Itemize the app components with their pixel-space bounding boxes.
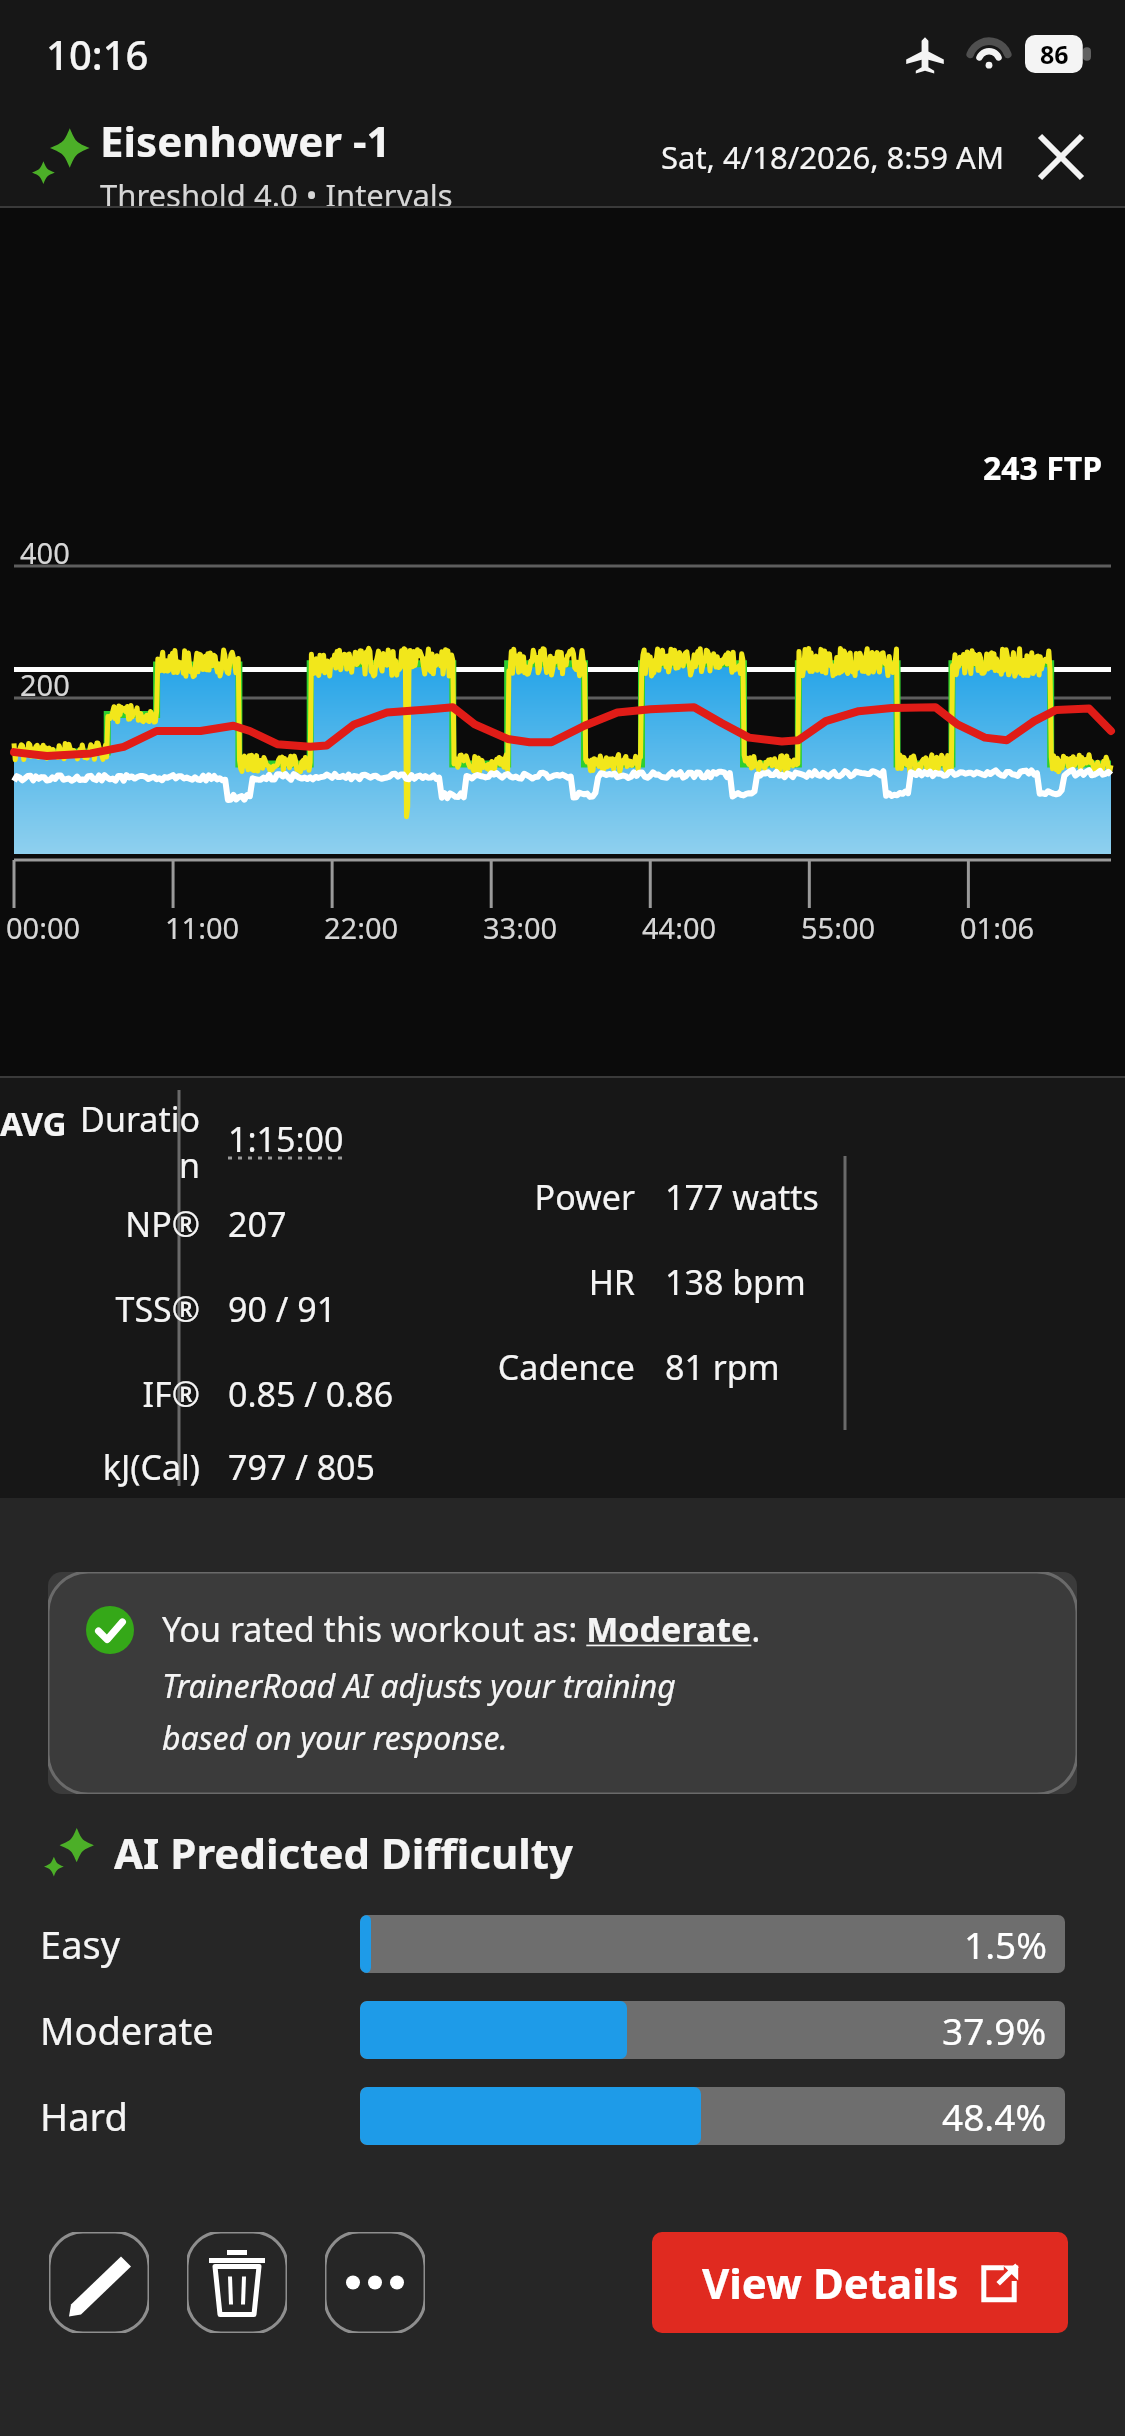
staticText: Power xyxy=(420,1174,635,1220)
staticText: View Details xyxy=(702,2254,959,2311)
staticText: IF® xyxy=(66,1371,200,1417)
staticText: 00:00 xyxy=(6,908,81,947)
staticText: 44:00 xyxy=(642,908,717,947)
staticText: 207 xyxy=(228,1201,287,1247)
staticText: 81 rpm xyxy=(665,1344,780,1390)
staticText: HR xyxy=(420,1259,635,1305)
staticText: NP® xyxy=(66,1201,200,1247)
staticText: TrainerRoad AI adjusts your training xyxy=(162,1664,676,1708)
staticText: Eisenhower -1 xyxy=(100,112,391,169)
staticText: Sat, 4/18/2026, 8:59 AM xyxy=(661,136,1005,178)
staticText: 33:00 xyxy=(483,908,558,947)
staticText: Threshold 4.0 • Intervals xyxy=(100,174,453,206)
staticText: 177 watts xyxy=(665,1174,819,1220)
staticText: You rated this workout as: Moderate. xyxy=(162,1606,761,1652)
staticText: Moderate xyxy=(40,2004,360,2056)
button[interactable]: View Details xyxy=(652,2232,1068,2333)
staticText: 90 / 91 xyxy=(228,1286,337,1332)
staticText: Duration xyxy=(66,1096,200,1181)
staticText: TSS® xyxy=(66,1286,200,1332)
button[interactable]: Hard xyxy=(0,2087,1125,2145)
staticText: 48.4% xyxy=(942,2091,1047,2141)
staticText: 55:00 xyxy=(801,908,876,947)
button[interactable]: Easy xyxy=(0,1915,1125,1973)
staticText: 01:06 xyxy=(960,908,1035,947)
staticText: Easy xyxy=(40,1918,360,1970)
staticText: 138 bpm xyxy=(665,1259,806,1305)
staticText: 10:16 xyxy=(46,27,149,81)
staticText: 22:00 xyxy=(324,908,399,947)
button[interactable]: You rated this workout as: Moderate. xyxy=(48,1572,1077,1794)
staticText: 200 xyxy=(20,665,70,704)
staticText: 86 xyxy=(1040,37,1069,71)
staticText: 0.85 / 0.86 xyxy=(228,1371,394,1417)
button[interactable]: Edit xyxy=(49,2232,149,2333)
staticText: 797 / 805 xyxy=(228,1444,376,1490)
button[interactable]: Moderate xyxy=(0,2001,1125,2059)
staticText: 400 xyxy=(20,533,70,572)
staticText: 243 FTP xyxy=(983,446,1103,490)
staticText: 11:00 xyxy=(165,908,240,947)
staticText: AVG xyxy=(0,1101,67,1146)
button[interactable]: Close xyxy=(1023,119,1099,195)
staticText: 37.9% xyxy=(942,2005,1047,2055)
staticText: Cadence xyxy=(420,1344,635,1390)
button[interactable]: More options xyxy=(325,2232,425,2333)
button[interactable]: Delete xyxy=(187,2232,287,2333)
staticText: AI Predicted Difficulty xyxy=(114,1824,573,1881)
staticText: Hard xyxy=(40,2090,360,2142)
staticText: based on your response. xyxy=(162,1716,508,1760)
staticText: 1.5% xyxy=(964,1919,1047,1969)
staticText: kJ(Cal) xyxy=(66,1444,200,1490)
staticText: 1:15:00 xyxy=(228,1116,344,1162)
